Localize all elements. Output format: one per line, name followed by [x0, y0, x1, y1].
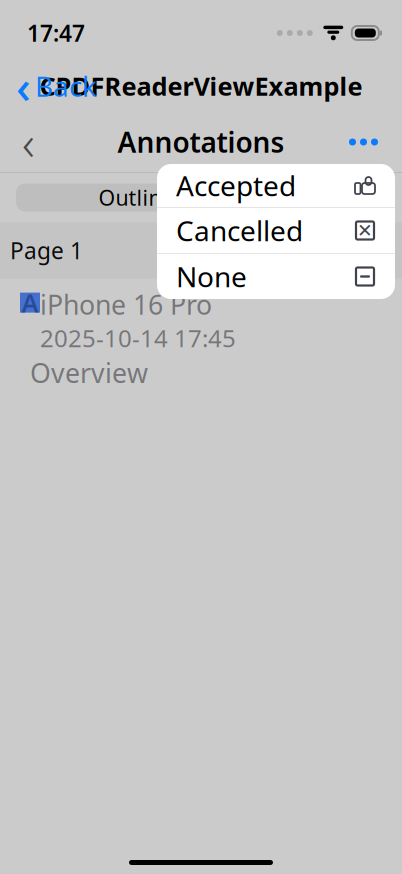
staticText: Accepted	[176, 167, 296, 204]
staticText: Back	[35, 67, 97, 105]
staticText: ✕	[357, 220, 373, 241]
staticText: A	[21, 286, 38, 319]
staticText: CPDFReaderViewExample	[39, 69, 362, 103]
staticText: ‹	[16, 56, 31, 116]
staticText: 17:47	[27, 18, 85, 48]
button[interactable]: Outlines	[16, 183, 266, 211]
button[interactable]: Back	[8, 106, 49, 178]
staticText: Annotations	[117, 123, 284, 161]
button[interactable]: More options	[333, 124, 394, 159]
staticText: Overview	[30, 355, 148, 390]
staticText: iPhone 16 Pro	[40, 287, 212, 322]
button[interactable]: None	[157, 254, 395, 299]
button[interactable]: Accepted	[157, 164, 395, 207]
staticText: None	[176, 258, 247, 295]
staticText: 2025-10-14 17:45	[40, 322, 236, 354]
staticText: Cancelled	[176, 212, 303, 249]
staticText: Page 1	[10, 235, 83, 266]
staticText: ‹	[22, 110, 35, 174]
staticText: Outlines	[98, 183, 183, 212]
button[interactable]: A	[0, 279, 402, 400]
button[interactable]: Cancelled	[157, 208, 395, 253]
button[interactable]: ‹	[6, 52, 107, 120]
